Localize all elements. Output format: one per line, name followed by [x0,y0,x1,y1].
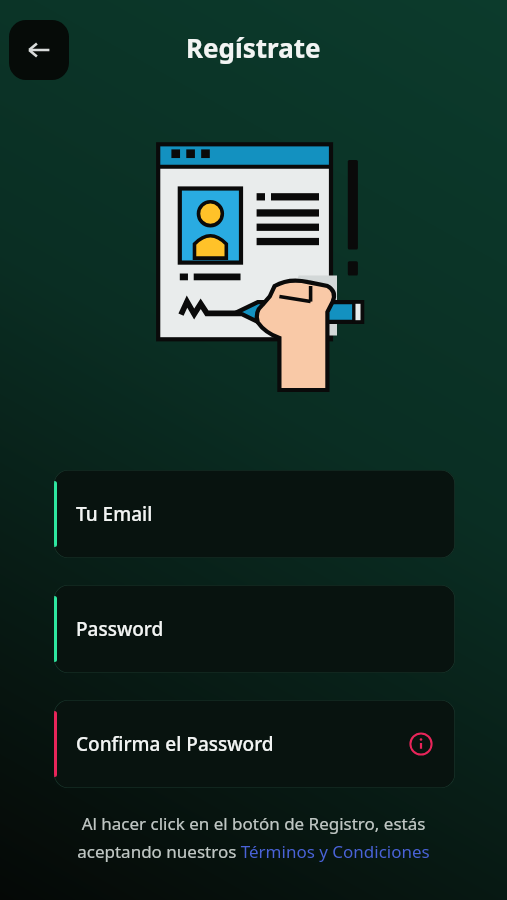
button[interactable]: Error info [409,732,433,756]
button[interactable]: Back [9,20,69,80]
staticText: Regístrate [186,30,321,65]
staticText: Password [76,616,164,642]
staticText: Confirma el Password [76,731,274,757]
button[interactable]: Confirma el Password [54,700,455,788]
button[interactable]: Al hacer click en el botón de Registro, … [56,812,451,863]
button[interactable]: Tu Email [54,470,455,558]
staticText: Tu Email [76,501,153,527]
button[interactable]: Password [54,585,455,673]
